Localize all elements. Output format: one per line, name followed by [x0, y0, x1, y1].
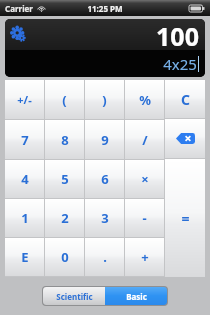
staticText: .: [103, 248, 107, 266]
button[interactable]: ): [85, 80, 124, 119]
staticText: 4: [21, 170, 29, 188]
staticText: 0: [61, 248, 69, 266]
staticText: 1: [21, 209, 29, 227]
button[interactable]: 7: [5, 120, 44, 159]
button[interactable]: C: [165, 80, 205, 118]
staticText: =: [181, 209, 190, 228]
button[interactable]: %: [125, 80, 164, 119]
button[interactable]: 5: [45, 160, 84, 198]
button[interactable]: .: [85, 238, 124, 276]
staticText: 7: [21, 131, 29, 149]
button[interactable]: E: [5, 238, 44, 276]
button[interactable]: ×: [125, 160, 164, 198]
staticText: C: [181, 90, 190, 109]
button[interactable]: 9: [85, 120, 124, 159]
staticText: Carrier: [5, 3, 33, 14]
button[interactable]: Settings: [10, 26, 28, 44]
staticText: 3: [101, 209, 109, 227]
button[interactable]: 0: [45, 238, 84, 276]
button[interactable]: Scientific: [43, 287, 105, 305]
button[interactable]: /: [125, 120, 164, 159]
staticText: 5: [61, 170, 69, 188]
button[interactable]: 6: [85, 160, 124, 198]
staticText: 8: [61, 131, 69, 149]
button[interactable]: 1: [5, 199, 44, 237]
staticText: E: [21, 248, 29, 266]
button[interactable]: (: [45, 80, 84, 119]
button[interactable]: =: [165, 159, 205, 277]
staticText: 100: [156, 19, 199, 50]
staticText: +/-: [17, 92, 32, 107]
button[interactable]: 8: [45, 120, 84, 159]
staticText: 6: [101, 170, 109, 188]
staticText: +: [141, 248, 149, 266]
staticText: 9: [101, 131, 109, 149]
button[interactable]: +/-: [5, 80, 44, 119]
staticText: ): [102, 91, 107, 109]
staticText: %: [139, 91, 151, 109]
button[interactable]: 4: [5, 160, 44, 198]
staticText: /: [142, 131, 148, 149]
staticText: 4x25: [163, 54, 197, 74]
button[interactable]: Backspace: [165, 119, 205, 158]
button[interactable]: Basic: [105, 287, 167, 305]
staticText: -: [142, 209, 147, 227]
button[interactable]: -: [125, 199, 164, 237]
button[interactable]: +: [125, 238, 164, 276]
staticText: (: [62, 91, 67, 109]
staticText: 2: [61, 209, 69, 227]
button[interactable]: 2: [45, 199, 84, 237]
button[interactable]: 3: [85, 199, 124, 237]
staticText: ×: [141, 170, 149, 188]
staticText: 11:25 PM: [87, 3, 123, 14]
staticText: Scientific: [56, 291, 93, 302]
staticText: Basic: [126, 291, 147, 302]
